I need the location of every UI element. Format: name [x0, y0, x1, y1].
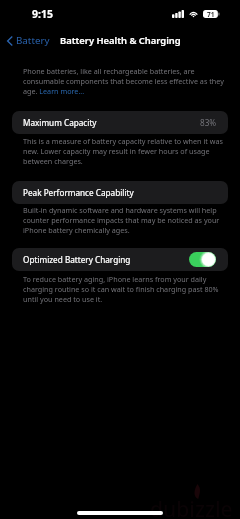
staticText: Maximum Capacity — [23, 117, 97, 128]
staticText: To reduce battery aging, iPhone learns f… — [23, 274, 227, 304]
button[interactable]: Optimized Battery Charging toggle — [189, 252, 216, 267]
staticText: 83% — [200, 117, 217, 128]
staticText: Built-in dynamic software and hardware s… — [23, 205, 227, 235]
button[interactable]: Maximum Capacity — [12, 111, 228, 134]
staticText: This is a measure of battery capacity re… — [23, 136, 227, 166]
staticText: Phone batteries, like all rechargeable b… — [23, 66, 227, 96]
staticText: Battery — [16, 34, 50, 47]
button[interactable]: Optimized Battery Charging — [12, 248, 228, 271]
staticText: Battery Health & Charging — [60, 34, 181, 47]
button[interactable]: Battery — [0, 31, 56, 50]
button[interactable]: Learn more about battery health — [36, 85, 75, 94]
button[interactable]: Peak Performance Capability — [12, 181, 228, 204]
staticText: dubizzle — [150, 495, 233, 519]
staticText: 71 — [207, 10, 215, 18]
staticText: Optimized Battery Charging — [23, 254, 131, 265]
staticText: Peak Performance Capability — [23, 187, 134, 198]
staticText: 9:15 — [32, 7, 53, 21]
